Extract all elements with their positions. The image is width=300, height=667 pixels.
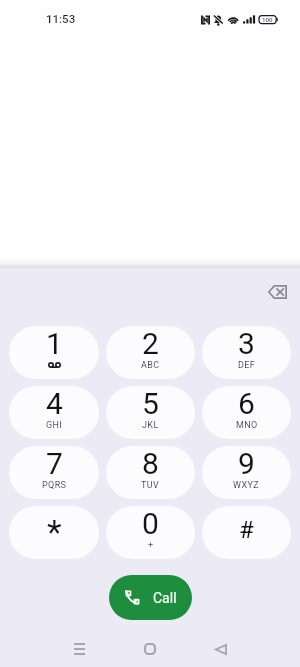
- staticText: 4: [46, 386, 63, 421]
- staticText: +: [148, 540, 154, 551]
- button[interactable]: 3: [202, 326, 291, 379]
- staticText: 5: [142, 386, 159, 421]
- staticText: Call: [153, 590, 177, 606]
- button[interactable]: 4: [9, 386, 99, 439]
- button[interactable]: #: [202, 506, 291, 559]
- staticText: #: [239, 516, 254, 544]
- button[interactable]: 8: [106, 446, 195, 499]
- staticText: JKL: [142, 420, 159, 431]
- staticText: 6: [238, 386, 255, 421]
- staticText: 1: [46, 326, 63, 361]
- staticText: 3: [238, 326, 255, 361]
- staticText: 8: [142, 446, 159, 481]
- staticText: 0: [142, 506, 159, 541]
- staticText: MNO: [236, 420, 258, 431]
- staticText: GHI: [46, 420, 63, 431]
- button[interactable]: 5: [106, 386, 195, 439]
- button[interactable]: 6: [202, 386, 291, 439]
- staticText: 9: [238, 446, 255, 481]
- button[interactable]: Backspace: [261, 276, 293, 308]
- staticText: WXYZ: [233, 480, 260, 491]
- staticText: PQRS: [42, 480, 67, 491]
- button[interactable]: 1: [9, 326, 99, 379]
- button[interactable]: 0: [106, 506, 195, 559]
- button[interactable]: *: [9, 506, 99, 559]
- button[interactable]: 9: [202, 446, 291, 499]
- button[interactable]: Back: [205, 633, 237, 665]
- button[interactable]: Call: [109, 575, 192, 620]
- staticText: ABC: [141, 360, 160, 371]
- staticText: 11:53: [46, 12, 76, 25]
- staticText: TUV: [141, 480, 160, 491]
- staticText: DEF: [238, 360, 256, 371]
- staticText: 100: [262, 16, 273, 23]
- staticText: 2: [142, 326, 159, 361]
- staticText: 7: [46, 446, 63, 481]
- button[interactable]: Home: [134, 633, 166, 665]
- button[interactable]: 7: [9, 446, 99, 499]
- button[interactable]: Recent apps: [63, 633, 95, 665]
- button[interactable]: 2: [106, 326, 195, 379]
- staticText: *: [47, 512, 62, 552]
